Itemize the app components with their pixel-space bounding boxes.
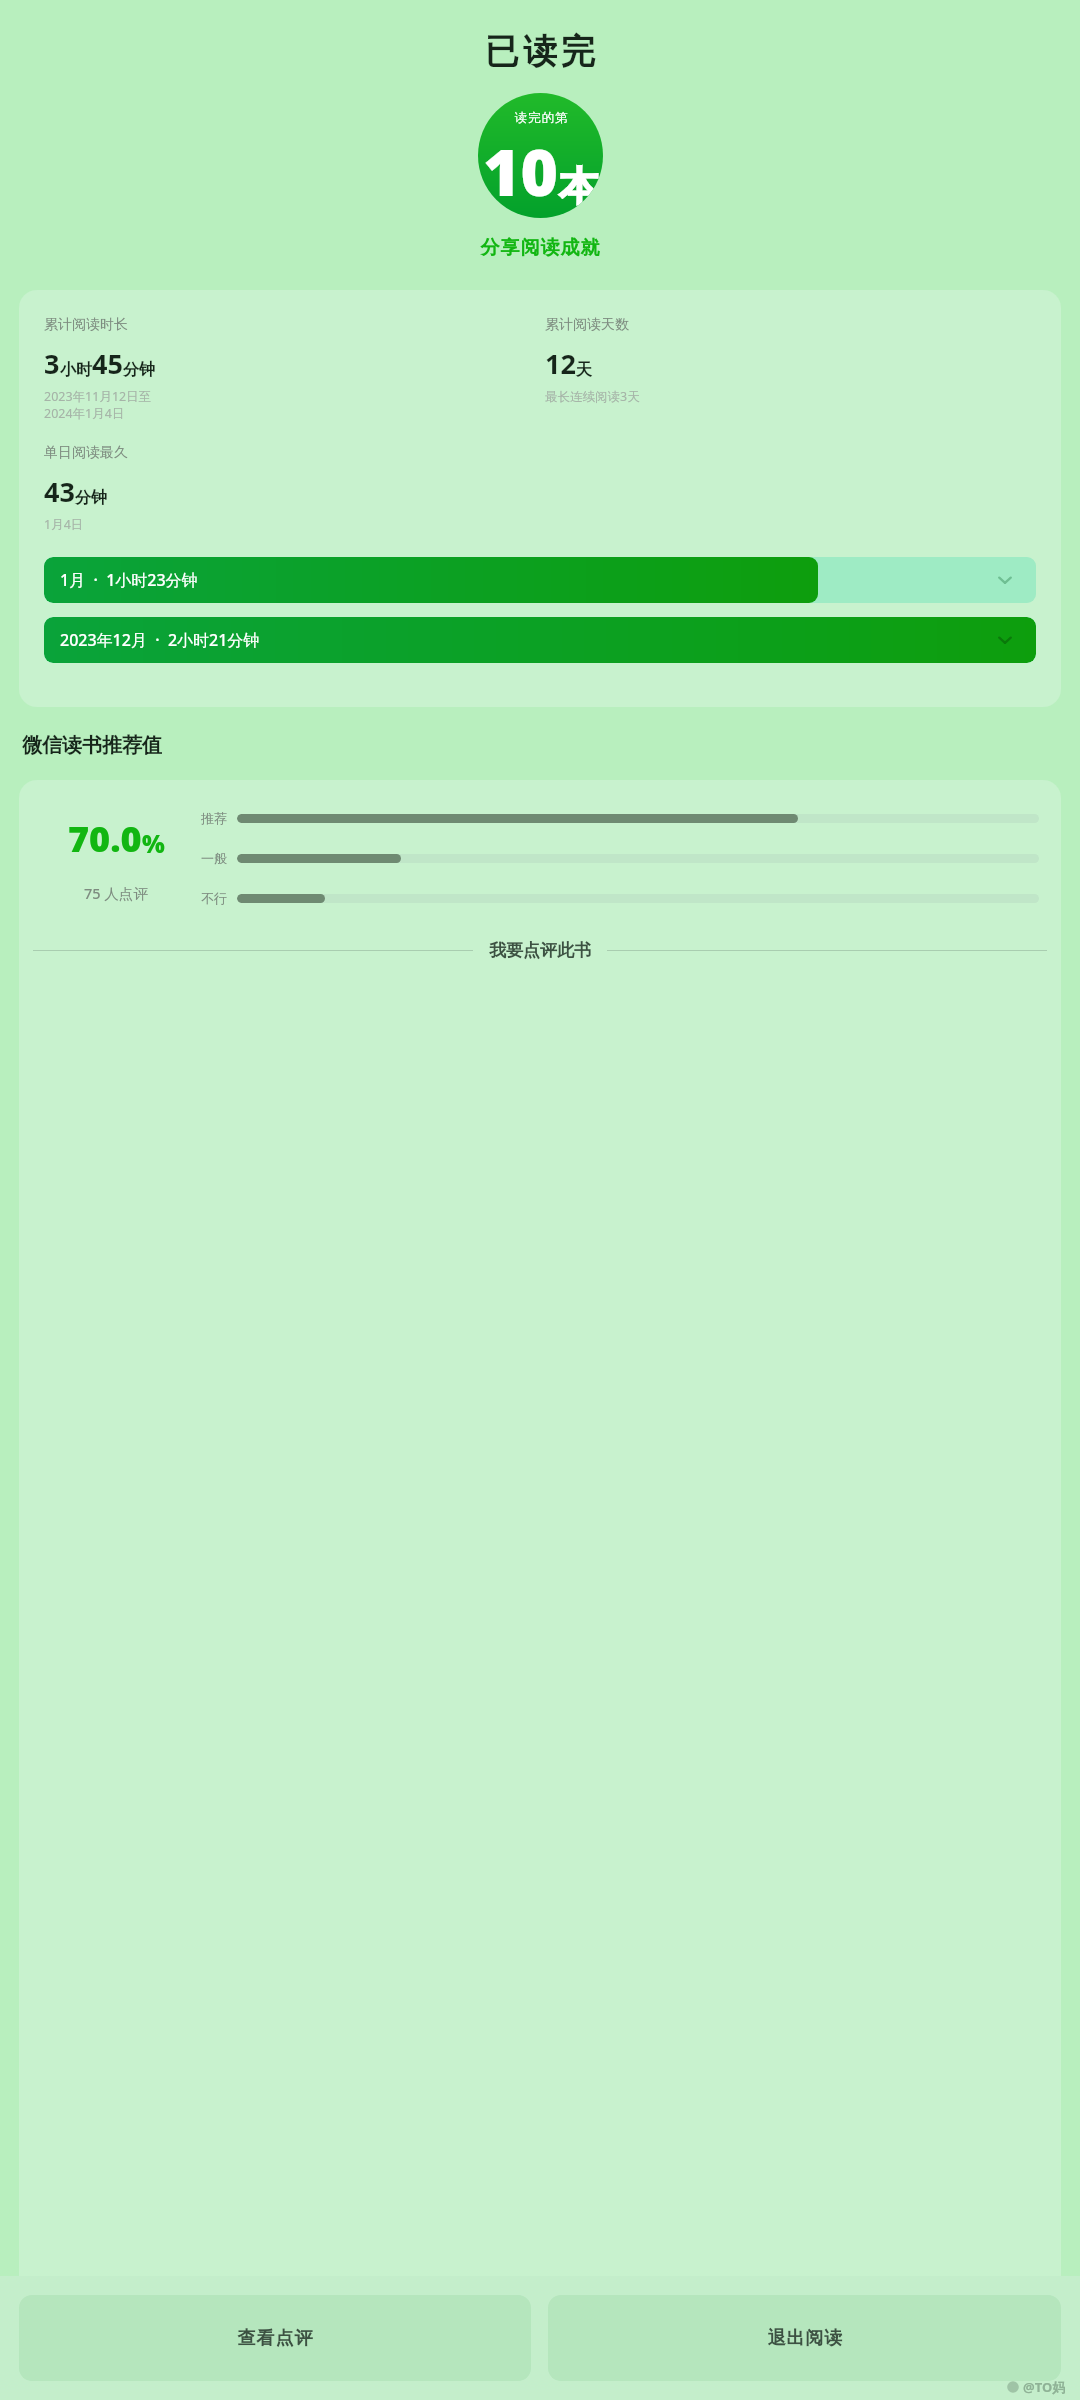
button[interactable]: 退出阅读 — [548, 2295, 1061, 2381]
staticText: 43 — [44, 473, 75, 510]
staticText: 单日阅读最久 — [44, 444, 128, 462]
button[interactable]: 分享阅读成就 — [0, 236, 1080, 260]
button[interactable]: 2023年12月 · 2小时21分钟 — [44, 617, 1036, 663]
staticText: 退出阅读 — [767, 2327, 843, 2350]
staticText: 已读完 — [483, 30, 597, 73]
staticText: 累计阅读天数 — [545, 316, 629, 334]
staticText: 75 人点评 — [84, 883, 148, 903]
button[interactable]: 1月 · 1小时23分钟 — [44, 557, 1036, 603]
staticText: 45 — [92, 345, 123, 382]
staticText: 一般 — [201, 850, 227, 866]
staticText: 天 — [576, 360, 592, 380]
other: Expand month details — [996, 571, 1014, 589]
staticText: 推荐 — [201, 810, 227, 826]
staticText: 不行 — [201, 890, 227, 906]
staticText: % — [142, 827, 165, 860]
staticText: 本 — [559, 161, 599, 211]
button[interactable]: 查看点评 — [19, 2295, 531, 2381]
staticText: 分享阅读成就 — [480, 236, 600, 260]
staticText: 2023年11月12日至 — [44, 388, 152, 405]
button[interactable]: 读完的第 — [478, 93, 603, 218]
staticText: 最长连续阅读3天 — [545, 388, 640, 405]
other: Expand month details — [996, 631, 1014, 649]
staticText: @TO妈 — [1023, 2378, 1066, 2396]
staticText: 读完的第 — [514, 110, 568, 126]
staticText: 1月4日 — [44, 516, 84, 533]
staticText: 累计阅读时长 — [44, 316, 128, 334]
staticText: 1月 · 1小时23分钟 — [60, 569, 198, 591]
staticText: 10 — [483, 128, 559, 215]
staticText: 微信读书推荐值 — [22, 733, 162, 758]
staticText: 分钟 — [75, 488, 107, 508]
staticText: 70.0 — [68, 814, 142, 863]
staticText: 我要点评此书 — [489, 940, 591, 961]
staticText: 2024年1月4日 — [44, 405, 125, 422]
staticText: 12 — [545, 345, 576, 382]
staticText: 2023年12月 · 2小时21分钟 — [60, 629, 260, 651]
staticText: 分钟 — [123, 360, 155, 380]
staticText: 小时 — [60, 360, 92, 380]
button[interactable]: 我要点评此书 — [19, 940, 1061, 961]
staticText: 查看点评 — [237, 2327, 313, 2350]
staticText: 3 — [44, 345, 60, 382]
